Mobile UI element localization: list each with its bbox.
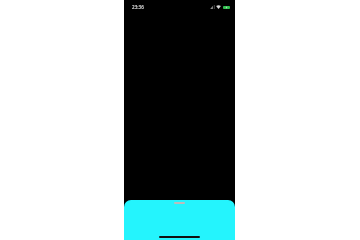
staticText: 23:36: [132, 4, 144, 10]
other: Battery charging: [223, 6, 230, 9]
button[interactable]: Bottom sheet: [124, 200, 235, 240]
other: Mobile signal: [210, 5, 215, 9]
other: Wi-Fi: [216, 5, 221, 9]
button[interactable]: Dismiss bottom sheet: [124, 0, 235, 240]
